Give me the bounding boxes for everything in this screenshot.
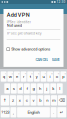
button[interactable]: . [51,107,57,117]
staticText: Show advanced options [11,47,50,51]
staticText: SAVE [52,58,60,62]
staticText: ?123 [1,110,9,115]
button[interactable]: n [44,95,50,105]
staticText: q [3,74,5,79]
button[interactable]: i [47,71,53,82]
staticText: v [32,98,34,103]
staticText: h [39,86,41,91]
staticText: j [46,86,47,91]
staticText: r [23,74,24,79]
staticText: y [36,74,38,79]
button[interactable]: m [51,95,57,105]
staticText: p [62,74,64,79]
button[interactable]: v [30,95,36,105]
staticText: d [19,86,21,91]
staticText: o [56,74,58,79]
staticText: x [19,98,21,103]
staticText: CANCEL [35,58,48,62]
staticText: 6 [38,72,39,75]
button[interactable]: b [37,95,43,105]
staticText: 7 [45,72,46,75]
button[interactable]: f [24,83,30,94]
staticText: n [46,98,48,103]
button[interactable]: k [50,83,56,94]
staticText: 9 [58,72,59,75]
button[interactable]: q [1,71,7,82]
button[interactable]: s [11,83,17,94]
staticText: ↑ [3,98,7,103]
staticText: IPSec identifier [7,20,31,24]
button[interactable]: e [14,71,20,82]
button[interactable]: r [21,71,26,82]
staticText: z [12,98,14,103]
button[interactable]: SAVE [50,56,61,63]
button[interactable]: o [54,71,60,82]
button[interactable]: a [4,83,10,94]
button[interactable]: t [27,71,33,82]
button[interactable]: x [17,95,23,105]
staticText: 3 [18,72,19,75]
staticText: 4 [25,72,26,75]
button[interactable]: ↑ [1,95,9,105]
staticText: m [52,98,56,103]
staticText: 5 [31,72,32,75]
button[interactable]: English [17,107,50,117]
staticText: IPsec pre-shared key [7,31,42,35]
staticText: e [16,74,18,79]
staticText: w [9,74,12,79]
button[interactable]: ⌫ [58,95,66,105]
button[interactable]: l [57,83,63,94]
button[interactable]: d [17,83,23,94]
button[interactable]: ↵ [57,107,66,117]
staticText: 12:30 [56,0,65,4]
staticText: l [59,86,60,91]
staticText: f [26,86,27,91]
button[interactable]: h [37,83,43,94]
staticText: b [39,98,41,103]
staticText: ⌫ [59,98,65,103]
staticText: . [53,110,54,115]
staticText: English [27,110,39,115]
staticText: Add VPN [7,12,30,18]
staticText: 8 [51,72,52,75]
button[interactable]: p [60,71,66,82]
button[interactable]: ?123 [1,107,10,117]
staticText: , [13,110,14,115]
staticText: Not used [7,23,22,28]
button[interactable]: u [40,71,46,82]
staticText: 1 [5,72,6,75]
button[interactable]: g [31,83,36,94]
button[interactable]: c [24,95,30,105]
staticText: u [42,74,44,79]
staticText: t [30,74,31,79]
staticText: c [26,98,28,103]
button[interactable]: y [34,71,40,82]
button[interactable]: , [10,107,16,117]
button[interactable]: z [10,95,16,105]
staticText: 0 [64,72,65,75]
staticText: a [6,86,8,91]
staticText: ↵ [60,110,64,115]
staticText: g [32,86,34,91]
button[interactable]: CANCEL [34,56,50,63]
staticText: i [50,74,51,79]
staticText: s [13,86,15,91]
button[interactable]: j [44,83,50,94]
staticText: k [52,86,54,91]
button[interactable]: w [7,71,13,82]
